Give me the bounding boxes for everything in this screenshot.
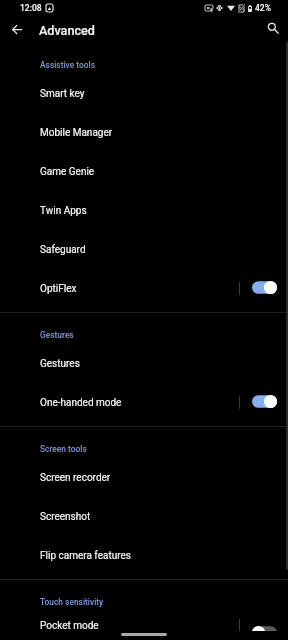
staticText: One-handed mode <box>40 397 239 409</box>
button[interactable]: On <box>252 395 277 408</box>
button[interactable]: Flip camera features <box>0 536 288 575</box>
staticText: Smart key <box>40 88 288 100</box>
staticText: Flip camera features <box>40 550 288 562</box>
staticText: Touch sensitivity <box>40 597 104 607</box>
button[interactable]: Game Genie <box>0 152 288 191</box>
button[interactable]: Back <box>3 17 31 43</box>
button[interactable]: Off <box>252 626 277 639</box>
button[interactable]: Safeguard <box>0 230 288 269</box>
staticText: OptiFlex <box>40 283 239 295</box>
button[interactable]: Smart key <box>0 74 288 113</box>
button[interactable]: Screen recorder <box>0 458 288 497</box>
staticText: Assistive tools <box>40 60 95 70</box>
staticText: Pocket mode <box>40 620 239 632</box>
button[interactable]: Twin Apps <box>0 191 288 230</box>
staticText: Mobile Manager <box>40 127 288 139</box>
button[interactable]: Screenshot <box>0 497 288 536</box>
staticText: Game Genie <box>40 166 288 178</box>
staticText: 42% <box>255 3 271 13</box>
staticText: Safeguard <box>40 244 288 256</box>
staticText: Screenshot <box>40 511 288 523</box>
button[interactable]: Mobile Manager <box>0 113 288 152</box>
button[interactable]: One-handed mode <box>0 383 288 422</box>
button[interactable]: Search <box>258 17 286 43</box>
staticText: Twin Apps <box>40 205 288 217</box>
button[interactable]: OptiFlex <box>0 269 288 308</box>
button[interactable]: Gestures <box>0 344 288 383</box>
staticText: Advanced <box>39 23 95 38</box>
button[interactable]: On <box>252 281 277 294</box>
staticText: 12:08 <box>20 3 42 13</box>
staticText: Screen recorder <box>40 472 288 484</box>
staticText: Screen tools <box>40 444 87 454</box>
staticText: Gestures <box>40 358 288 370</box>
staticText: Gestures <box>40 330 74 340</box>
button[interactable]: Pocket mode <box>0 611 288 640</box>
